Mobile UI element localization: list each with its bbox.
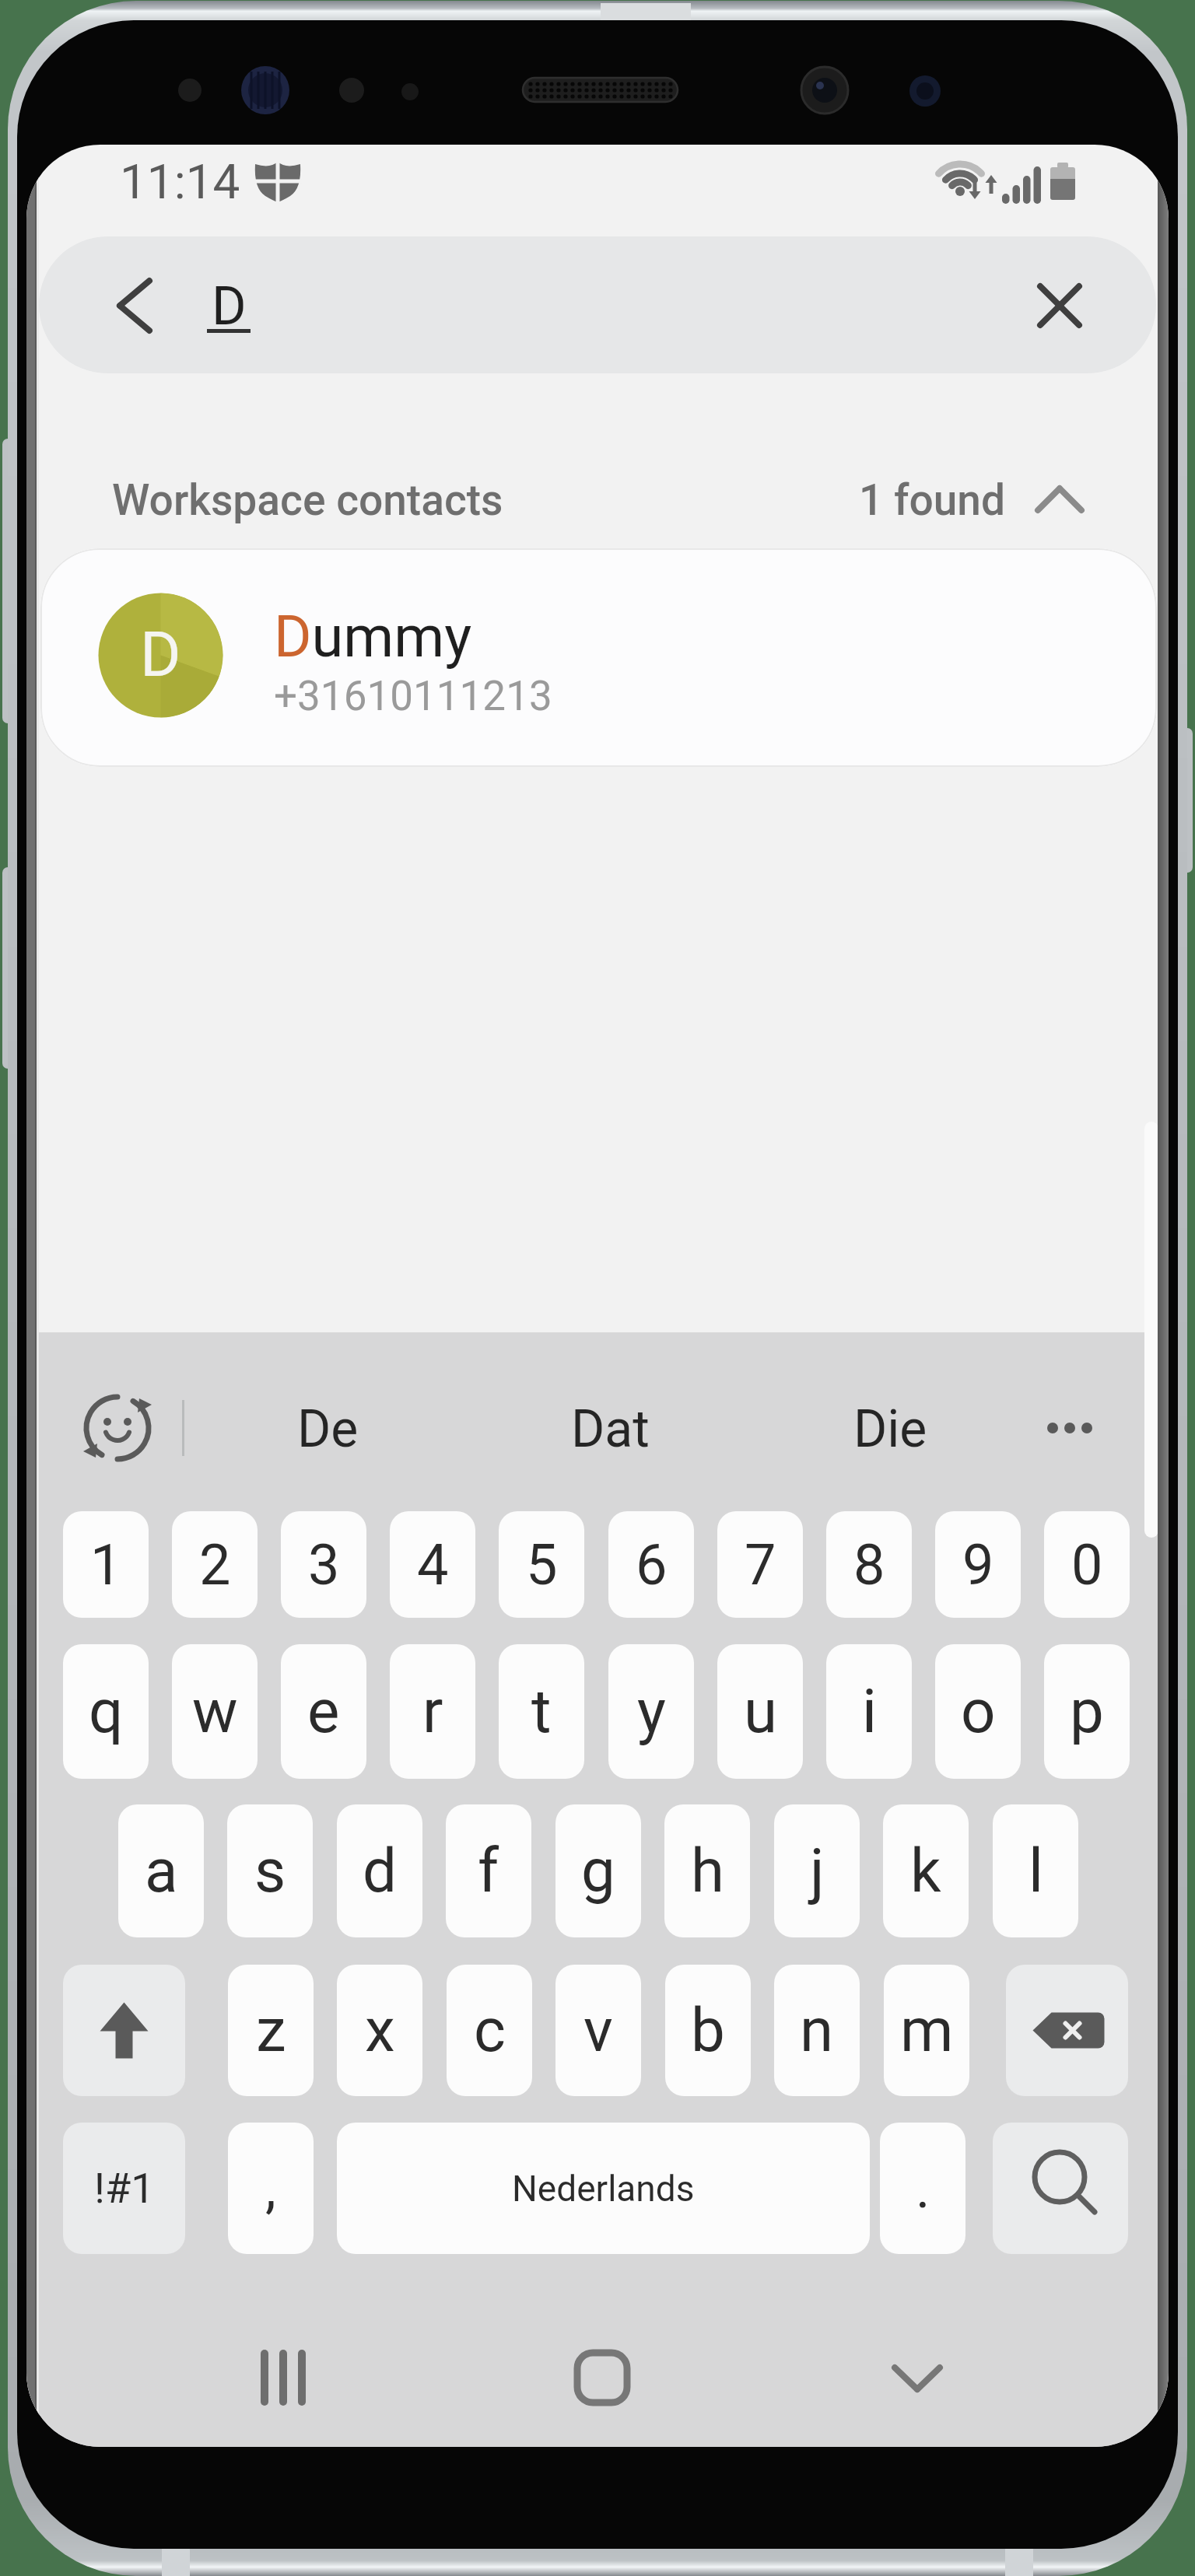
button[interactable]: e: [281, 1644, 366, 1779]
button[interactable]: k: [883, 1804, 969, 1937]
button[interactable]: 3: [281, 1511, 366, 1618]
button[interactable]: w: [172, 1644, 258, 1779]
button[interactable]: 2: [172, 1511, 258, 1618]
button[interactable]: 7: [717, 1511, 803, 1618]
staticText: Dummy: [274, 603, 472, 670]
button[interactable]: [73, 1366, 162, 1490]
button[interactable]: 1: [63, 1511, 149, 1618]
button[interactable]: ,: [228, 2123, 314, 2254]
button[interactable]: g: [555, 1804, 641, 1937]
button[interactable]: j: [774, 1804, 860, 1937]
button[interactable]: d: [337, 1804, 422, 1937]
staticText: s: [254, 1836, 286, 1906]
button[interactable]: 9: [935, 1511, 1021, 1618]
staticText: ,: [265, 2157, 276, 2221]
staticText: x: [365, 1995, 395, 2066]
button[interactable]: D: [40, 548, 1157, 767]
staticText: y: [637, 1676, 666, 1747]
staticText: D: [212, 275, 247, 338]
button[interactable]: t: [499, 1644, 584, 1779]
staticText: Workspace contacts: [112, 475, 503, 525]
button[interactable]: [867, 2327, 968, 2428]
button[interactable]: [85, 256, 184, 355]
staticText: m: [900, 1995, 954, 2066]
staticText: b: [691, 1995, 725, 2066]
button[interactable]: u: [717, 1644, 803, 1779]
staticText: 1 found: [859, 475, 1005, 525]
staticText: f: [478, 1836, 499, 1906]
button[interactable]: v: [555, 1965, 641, 2096]
button[interactable]: h: [664, 1804, 750, 1937]
staticText: 7: [745, 1532, 776, 1598]
staticText: 2: [199, 1532, 231, 1598]
button[interactable]: Dat: [493, 1399, 727, 1457]
staticText: c: [474, 1995, 506, 2066]
button[interactable]: f: [446, 1804, 531, 1937]
staticText: 6: [636, 1532, 668, 1598]
button[interactable]: p: [1044, 1644, 1130, 1779]
staticText: De: [297, 1399, 359, 1457]
staticText: q: [89, 1676, 124, 1747]
staticText: 0: [1071, 1532, 1103, 1598]
button[interactable]: [1030, 1399, 1109, 1457]
button[interactable]: m: [884, 1965, 969, 2096]
button[interactable]: r: [390, 1644, 475, 1779]
button[interactable]: 4: [390, 1511, 475, 1618]
staticText: h: [691, 1836, 724, 1906]
staticText: 1: [90, 1532, 122, 1598]
staticText: e: [307, 1676, 340, 1747]
button[interactable]: [552, 2327, 653, 2428]
staticText: !#1: [94, 2164, 155, 2213]
button[interactable]: c: [447, 1965, 532, 2096]
button[interactable]: [63, 1965, 185, 2096]
staticText: l: [1029, 1836, 1043, 1906]
staticText: 4: [417, 1532, 449, 1598]
button[interactable]: x: [337, 1965, 422, 2096]
staticText: j: [810, 1836, 825, 1906]
staticText: w: [192, 1676, 238, 1747]
button[interactable]: z: [228, 1965, 314, 2096]
staticText: 5: [526, 1532, 558, 1598]
button[interactable]: 6: [608, 1511, 694, 1618]
button[interactable]: n: [774, 1965, 860, 2096]
button[interactable]: 0: [1044, 1511, 1130, 1618]
staticText: k: [910, 1836, 941, 1906]
button[interactable]: b: [665, 1965, 751, 2096]
staticText: Dat: [571, 1399, 650, 1457]
button[interactable]: 5: [499, 1511, 584, 1618]
button[interactable]: [1030, 471, 1089, 529]
button[interactable]: [1010, 256, 1109, 355]
button[interactable]: 8: [826, 1511, 912, 1618]
staticText: t: [531, 1676, 552, 1747]
button[interactable]: [237, 2327, 338, 2428]
staticText: 8: [853, 1532, 885, 1598]
button[interactable]: s: [227, 1804, 313, 1937]
staticText: Nederlands: [512, 2168, 695, 2210]
staticText: 9: [962, 1532, 994, 1598]
button[interactable]: Nederlands: [337, 2123, 870, 2254]
staticText: 11:14: [120, 153, 240, 210]
staticText: i: [862, 1676, 877, 1747]
staticText: p: [1070, 1676, 1104, 1747]
button[interactable]: q: [63, 1644, 149, 1779]
button[interactable]: De: [211, 1399, 444, 1457]
staticText: +31610111213: [274, 672, 552, 720]
button[interactable]: Die: [773, 1399, 1007, 1457]
button[interactable]: i: [826, 1644, 912, 1779]
button[interactable]: [993, 2123, 1128, 2254]
button[interactable]: !#1: [63, 2123, 185, 2254]
staticText: .: [916, 2157, 930, 2221]
staticText: z: [256, 1995, 286, 2066]
button[interactable]: o: [935, 1644, 1021, 1779]
button[interactable]: [1006, 1965, 1128, 2096]
button[interactable]: l: [993, 1804, 1078, 1937]
staticText: D: [140, 618, 181, 691]
staticText: g: [581, 1836, 615, 1906]
staticText: a: [145, 1836, 178, 1906]
staticText: u: [744, 1676, 777, 1747]
button[interactable]: y: [608, 1644, 694, 1779]
button[interactable]: [39, 236, 1156, 373]
staticText: 3: [308, 1532, 340, 1598]
button[interactable]: .: [880, 2123, 965, 2254]
button[interactable]: a: [118, 1804, 204, 1937]
